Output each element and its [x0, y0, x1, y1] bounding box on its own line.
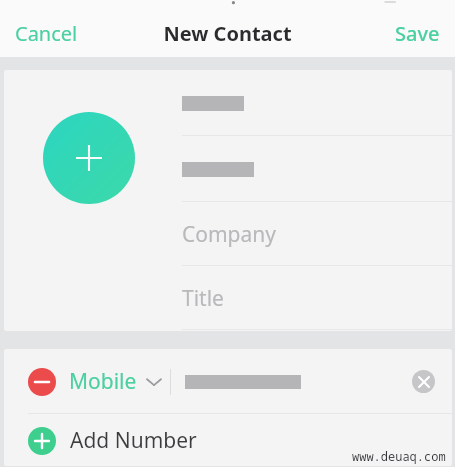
button[interactable]: Remove phone number [4, 349, 452, 414]
button[interactable] [182, 136, 452, 202]
staticText: New Contact [163, 20, 292, 47]
button[interactable]: Clear number [412, 370, 435, 393]
button[interactable] [182, 70, 452, 136]
other: Change label [147, 375, 161, 389]
button[interactable]: Title [182, 266, 452, 330]
staticText: Add Number [70, 426, 197, 455]
staticText: Title [182, 284, 224, 313]
button[interactable]: Add Number [4, 414, 452, 466]
button[interactable]: Remove phone number [28, 368, 56, 396]
staticText: Company [182, 220, 276, 249]
button[interactable]: Add photo [43, 112, 135, 204]
staticText: Mobile [69, 367, 137, 396]
staticText: www.deuaq.com [352, 448, 446, 464]
button[interactable]: Save [380, 12, 455, 55]
staticText: Cancel [15, 20, 78, 47]
button[interactable]: Cancel [0, 12, 93, 55]
staticText: Save [395, 20, 440, 47]
button[interactable]: Company [182, 202, 452, 266]
